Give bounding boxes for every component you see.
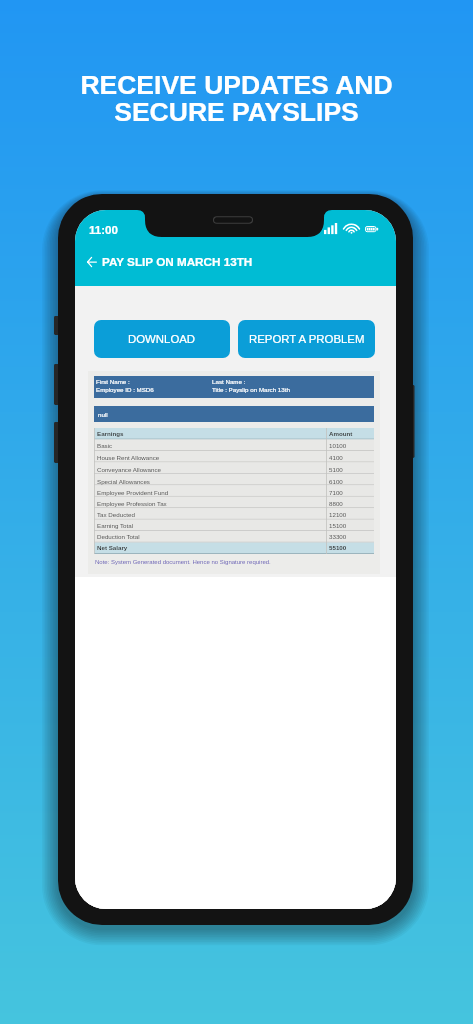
staticText: 6100	[329, 478, 343, 485]
staticText: 15100	[329, 522, 347, 529]
staticText: Employee Profession Tax	[97, 500, 167, 507]
staticText: null	[98, 411, 108, 418]
staticText: Earnings	[97, 430, 124, 437]
staticText: PAY SLIP ON MARCH 13TH	[102, 255, 253, 268]
staticText: Conveyance Allowance	[97, 466, 161, 473]
staticText: Employee Provident Fund	[97, 489, 169, 496]
staticText: First Name :	[96, 378, 130, 385]
button[interactable]: Back	[80, 237, 104, 286]
staticText: Last Name :	[212, 378, 246, 385]
staticText: 55100	[329, 544, 347, 551]
button[interactable]: REPORT A PROBLEM	[238, 320, 375, 358]
staticText: Basic	[97, 442, 113, 449]
staticText: RECEIVE UPDATES AND SECURE PAYSLIPS	[0, 70, 473, 127]
staticText: DOWNLOAD	[128, 333, 196, 346]
staticText: Net Salary	[97, 544, 128, 551]
staticText: House Rent Allowance	[97, 454, 160, 461]
staticText: REPORT A PROBLEM	[249, 333, 365, 346]
staticText: 4100	[329, 454, 343, 461]
staticText: 11:00	[89, 223, 119, 236]
staticText: 10100	[329, 442, 347, 449]
staticText: 33300	[329, 533, 347, 540]
staticText: Note: System Generated document. Hence n…	[95, 559, 271, 566]
staticText: Employee ID : MSD6	[96, 386, 154, 393]
staticText: Title : Payslip on March 13th	[212, 386, 290, 393]
staticText: Special Allowances	[97, 478, 150, 485]
staticText: 5100	[329, 466, 343, 473]
staticText: Deduction Total	[97, 533, 140, 540]
staticText: 7100	[329, 489, 343, 496]
staticText: Tax Deducted	[97, 511, 135, 518]
button[interactable]: DOWNLOAD	[94, 320, 230, 358]
staticText: 8800	[329, 500, 343, 507]
staticText: Amount	[329, 430, 353, 437]
staticText: 12100	[329, 511, 347, 518]
staticText: Earning Total	[97, 522, 134, 529]
